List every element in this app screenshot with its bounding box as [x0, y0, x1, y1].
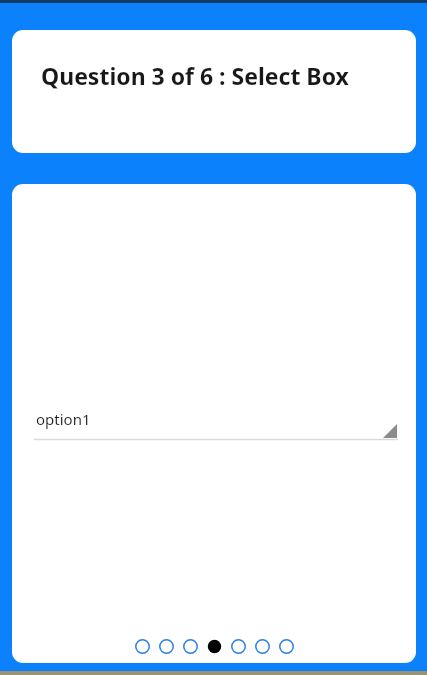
staticText: Question 3 of 6 : Select Box — [41, 60, 361, 91]
button[interactable]: Go to page — [135, 639, 150, 654]
button[interactable]: Go to page — [255, 639, 270, 654]
button[interactable]: Question 3 of 6 : Select Box — [12, 30, 416, 153]
button[interactable]: Go to page — [231, 639, 246, 654]
button[interactable]: Go to page — [159, 639, 174, 654]
button[interactable]: Go to page — [183, 639, 198, 654]
button[interactable]: Go to page — [279, 639, 294, 654]
staticText: option1 — [36, 409, 91, 429]
button[interactable]: Current page — [207, 639, 222, 654]
button[interactable]: option1 — [34, 406, 398, 440]
